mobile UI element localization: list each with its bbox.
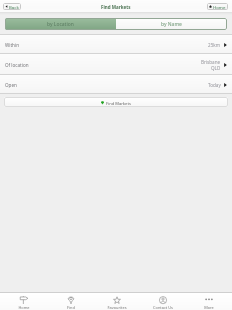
staticText: Find Markets [106, 101, 131, 106]
staticText: by Location [47, 21, 74, 28]
staticText: Favourites [107, 305, 127, 310]
button[interactable]: by Location [5, 18, 116, 30]
staticText: Find [67, 305, 75, 310]
button[interactable]: Back [3, 3, 21, 10]
button[interactable]: Contact Us [140, 293, 186, 310]
button[interactable]: Within [0, 35, 232, 53]
staticText: Brisbane [201, 59, 221, 65]
staticText: 25km [208, 42, 221, 48]
staticText: Contact Us [153, 305, 173, 310]
staticText: Back [9, 4, 19, 10]
button[interactable]: Open [0, 75, 232, 93]
button[interactable]: Home [0, 293, 47, 310]
button[interactable]: Favourites [94, 293, 140, 310]
staticText: QLD [211, 65, 221, 71]
button[interactable]: Find Markets [4, 97, 228, 107]
staticText: Home [18, 305, 30, 310]
button[interactable]: More [186, 293, 232, 310]
staticText: Within [5, 42, 19, 48]
staticText: Of location [5, 62, 29, 68]
button[interactable]: by Name [116, 18, 227, 30]
staticText: Open [5, 82, 17, 88]
button[interactable]: Find [47, 293, 94, 310]
staticText: More [204, 305, 214, 310]
staticText: Home [213, 4, 226, 10]
staticText: by Name [161, 21, 182, 28]
button[interactable]: Of location [0, 54, 232, 74]
staticText: Today [208, 82, 221, 88]
staticText: Find Markets [101, 4, 131, 10]
button[interactable]: Home [207, 3, 228, 10]
